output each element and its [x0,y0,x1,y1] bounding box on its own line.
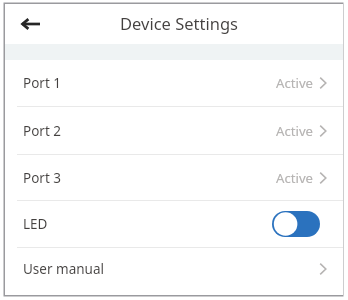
button[interactable]: Back [17,12,41,36]
button[interactable]: Port 3 [5,155,343,200]
staticText: Port 1 [23,74,62,92]
staticText: Active [276,122,314,140]
staticText: Port 2 [23,122,62,140]
staticText: Active [276,74,314,92]
staticText: Device Settings [120,12,238,34]
staticText: LED [23,215,48,233]
button[interactable]: LED [5,201,343,247]
button[interactable]: LED toggle [272,211,320,237]
button[interactable]: Port 2 [5,107,343,154]
staticText: Active [276,169,314,187]
staticText: Port 3 [23,169,62,187]
button[interactable]: Port 1 [5,60,343,106]
staticText: User manual [23,260,104,278]
button[interactable]: User manual [5,248,343,290]
